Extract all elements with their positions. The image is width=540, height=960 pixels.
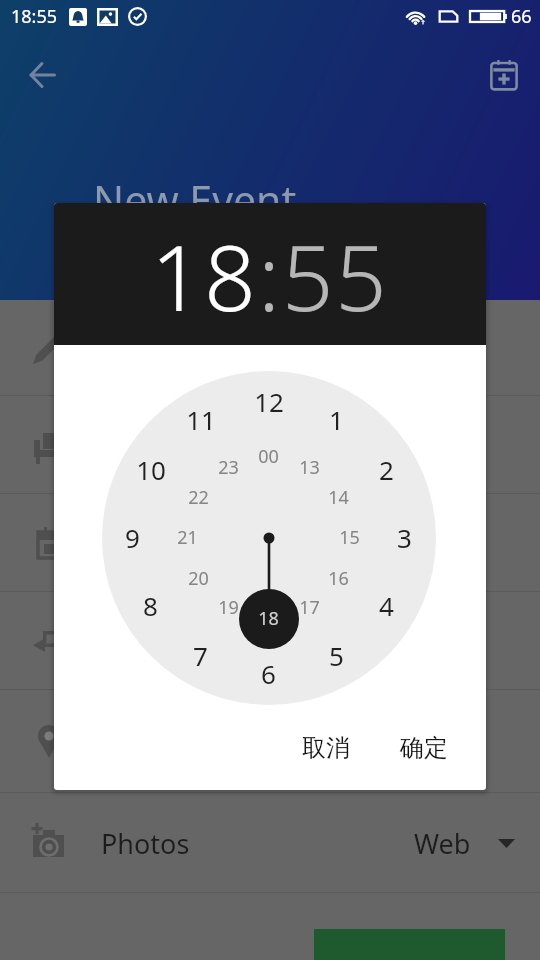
- staticText: 1: [329, 402, 344, 437]
- staticText: 8: [143, 588, 158, 623]
- button[interactable]: 18: [151, 215, 258, 338]
- staticText: 22: [188, 485, 209, 510]
- button[interactable]: Back: [12, 45, 72, 105]
- button[interactable]: [0, 494, 540, 592]
- staticText: 20: [188, 566, 209, 591]
- button[interactable]: [0, 300, 540, 396]
- staticText: 5: [329, 638, 344, 673]
- staticText: 18: [151, 215, 258, 338]
- staticText: 9: [125, 520, 140, 555]
- staticText: 16: [328, 566, 349, 591]
- staticText: :: [258, 215, 282, 338]
- staticText: 6: [261, 656, 276, 691]
- button[interactable]: Add event: [474, 45, 534, 105]
- staticText: 00: [258, 444, 279, 469]
- staticText: New Event: [93, 172, 297, 228]
- staticText: Photos: [101, 825, 190, 862]
- staticText: 14: [328, 485, 349, 510]
- staticText: 13: [299, 455, 320, 480]
- staticText: 66: [511, 4, 532, 29]
- staticText: 11: [186, 402, 216, 437]
- staticText: 18:55: [11, 4, 58, 29]
- staticText: 15: [339, 525, 360, 550]
- staticText: 3: [397, 520, 412, 555]
- staticText: 21: [177, 525, 198, 550]
- button[interactable]: 取消: [284, 721, 368, 775]
- button[interactable]: Photos: [0, 793, 540, 893]
- button[interactable]: [0, 690, 540, 793]
- staticText: 12: [254, 384, 284, 419]
- staticText: 19: [218, 595, 239, 620]
- staticText: 取消: [302, 733, 350, 763]
- button[interactable]: 55: [282, 215, 389, 338]
- button[interactable]: [0, 592, 540, 690]
- button[interactable]: [0, 396, 540, 494]
- staticText: 10: [136, 452, 166, 487]
- staticText: 17: [299, 595, 320, 620]
- staticText: 55: [282, 215, 389, 338]
- staticText: 4: [379, 588, 394, 623]
- staticText: 2: [379, 452, 394, 487]
- staticText: 23: [218, 455, 239, 480]
- staticText: 确定: [400, 733, 448, 763]
- button[interactable]: 确定: [382, 721, 466, 775]
- staticText: 18: [258, 606, 279, 631]
- staticText: Web: [414, 825, 471, 862]
- staticText: 7: [193, 638, 208, 673]
